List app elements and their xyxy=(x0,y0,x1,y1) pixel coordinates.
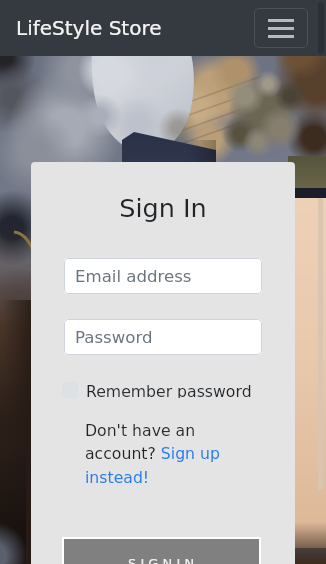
staticText: Password xyxy=(75,328,153,347)
staticText: Email address xyxy=(75,267,192,286)
button[interactable]: Remember password xyxy=(62,382,252,398)
button[interactable]: Open navigation menu xyxy=(254,8,308,48)
button[interactable]: Email address xyxy=(64,258,262,294)
staticText: Remember password xyxy=(86,382,252,398)
button[interactable]: Password xyxy=(64,319,262,355)
button[interactable]: S I G N I N xyxy=(64,539,259,564)
staticText: Sign In xyxy=(31,193,295,223)
staticText: Don't have an account? Sign up instead! xyxy=(85,421,237,487)
staticText: S I G N I N xyxy=(128,556,195,564)
staticText: LifeStyle Store xyxy=(16,16,162,39)
